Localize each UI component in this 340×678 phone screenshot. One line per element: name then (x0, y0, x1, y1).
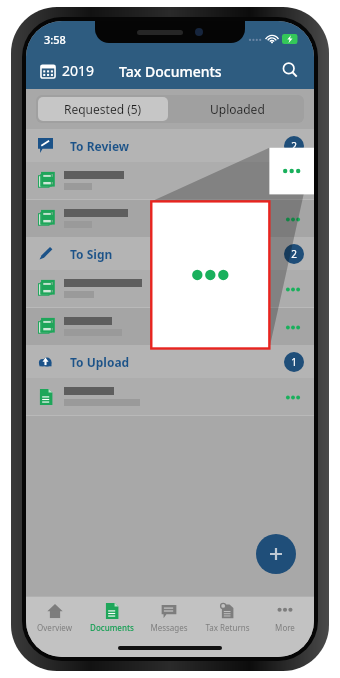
button[interactable]: Tax Returns (198, 597, 256, 639)
button[interactable]: To Sign (26, 237, 314, 270)
button[interactable]: More options (26, 378, 314, 415)
button[interactable]: Search (276, 56, 304, 84)
button[interactable]: More options (278, 166, 308, 196)
button[interactable]: More options (26, 162, 314, 199)
staticText: To Sign (70, 246, 113, 262)
staticText: 3:58 (44, 32, 66, 47)
staticText: 2 (291, 247, 297, 261)
staticText: Tax Returns (205, 622, 250, 633)
button[interactable]: 2019 (26, 59, 101, 82)
button[interactable]: Uploaded (170, 95, 304, 123)
button[interactable]: More options (26, 308, 314, 345)
button[interactable]: More options (278, 382, 308, 412)
button[interactable]: Requested (5) (38, 97, 168, 121)
staticText: More (275, 622, 295, 633)
button[interactable]: Messages (140, 597, 198, 639)
staticText: To Upload (70, 354, 130, 370)
staticText: 1 (291, 355, 297, 369)
staticText: 2019 (62, 61, 95, 80)
button[interactable]: More options (26, 270, 314, 307)
staticText: To Review (70, 138, 130, 154)
button[interactable]: More options (278, 312, 308, 342)
staticText: 2 (291, 139, 297, 153)
button[interactable]: More (256, 597, 314, 639)
staticText: Uploaded (210, 101, 265, 117)
button[interactable]: More options (26, 200, 314, 237)
button[interactable]: To Upload (26, 345, 314, 378)
staticText: Requested (5) (64, 101, 142, 117)
staticText: Tax Documents (119, 62, 222, 81)
button[interactable]: More options (278, 204, 308, 234)
button[interactable]: Add document (256, 534, 296, 574)
button[interactable]: To Review (26, 129, 314, 162)
button[interactable]: Overview (26, 597, 83, 639)
staticText: Overview (37, 622, 72, 633)
staticText: Messages (150, 622, 188, 633)
staticText: Documents (90, 622, 134, 633)
button[interactable]: Documents (83, 597, 140, 639)
button[interactable]: More options (278, 274, 308, 304)
